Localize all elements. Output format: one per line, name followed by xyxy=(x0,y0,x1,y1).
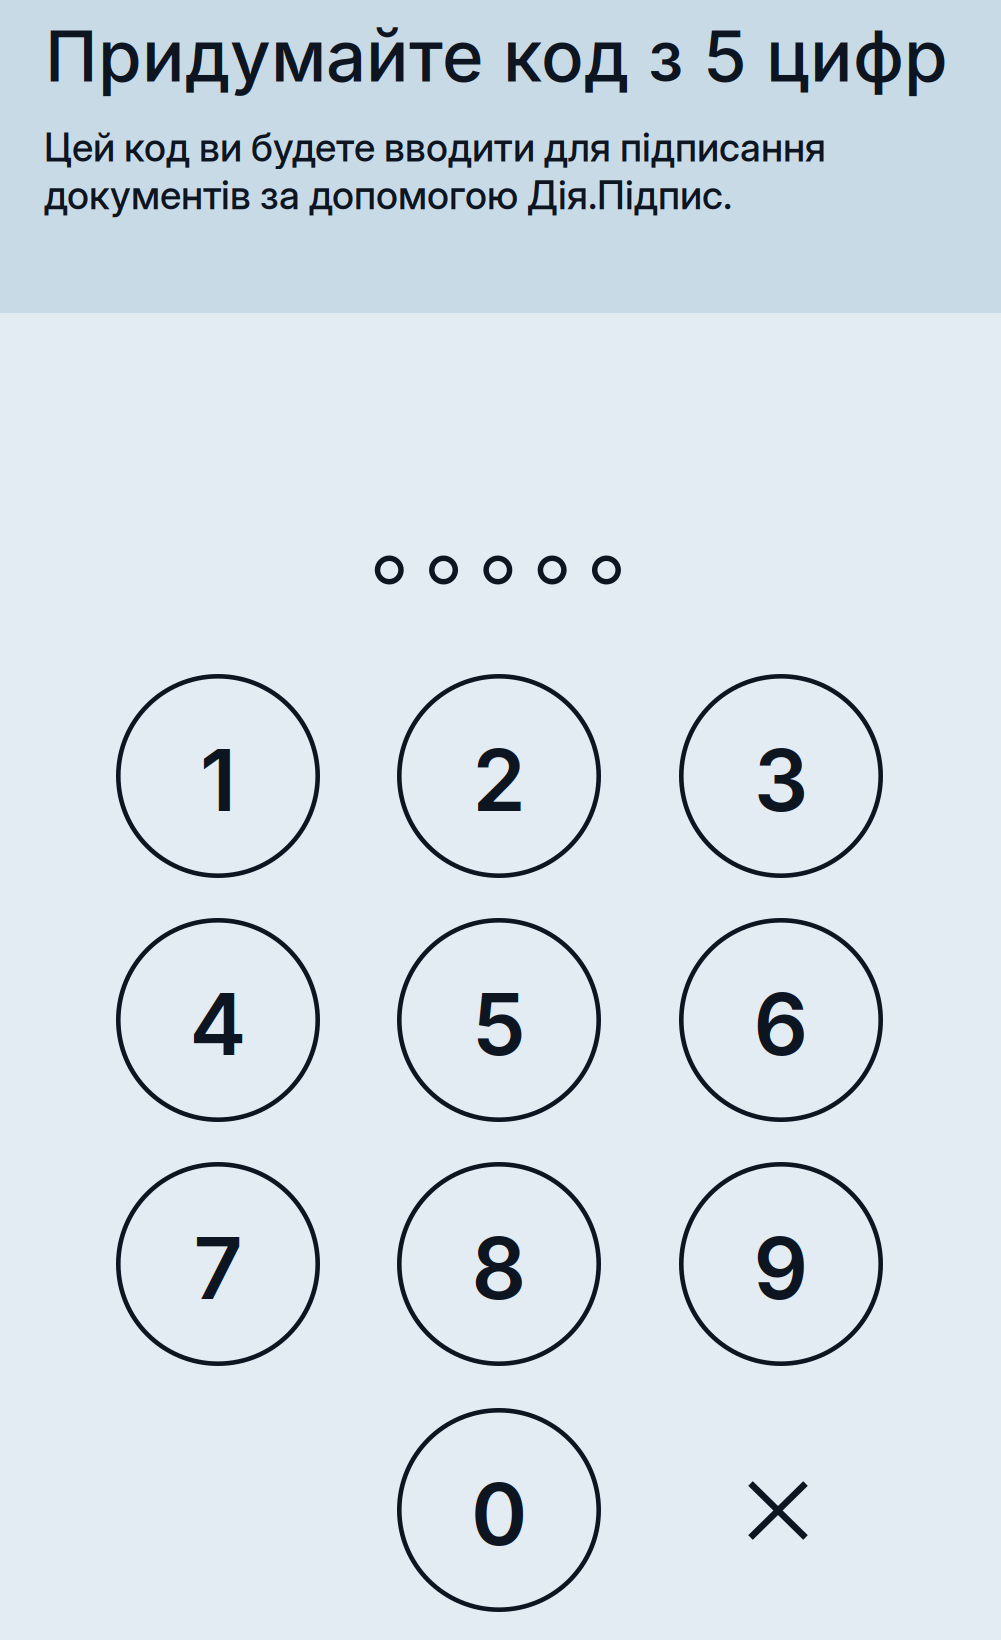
button[interactable]: 9 xyxy=(679,1162,883,1366)
staticText: 9 xyxy=(753,1216,808,1320)
staticText: 2 xyxy=(472,728,525,832)
button[interactable]: 8 xyxy=(397,1162,601,1366)
staticText: 8 xyxy=(471,1216,526,1320)
button[interactable]: 2 xyxy=(397,674,601,878)
staticText: 3 xyxy=(754,728,808,832)
button[interactable]: 5 xyxy=(397,918,601,1122)
button[interactable]: 0 xyxy=(397,1408,601,1612)
staticText: 1 xyxy=(200,728,236,832)
staticText: Цей код ви будете вводити для підписання… xyxy=(44,124,826,219)
staticText: 4 xyxy=(189,972,246,1076)
button[interactable]: 7 xyxy=(116,1162,320,1366)
button[interactable]: Delete xyxy=(679,1408,883,1612)
button[interactable]: 3 xyxy=(679,674,883,878)
staticText: 6 xyxy=(753,972,808,1076)
button[interactable]: 1 xyxy=(116,674,320,878)
staticText: 0 xyxy=(471,1462,527,1566)
staticText: 7 xyxy=(193,1216,242,1320)
button[interactable]: 4 xyxy=(116,918,320,1122)
button[interactable]: 6 xyxy=(679,918,883,1122)
staticText: 5 xyxy=(472,972,526,1076)
staticText: Придумайте код з 5 цифр xyxy=(45,13,948,98)
